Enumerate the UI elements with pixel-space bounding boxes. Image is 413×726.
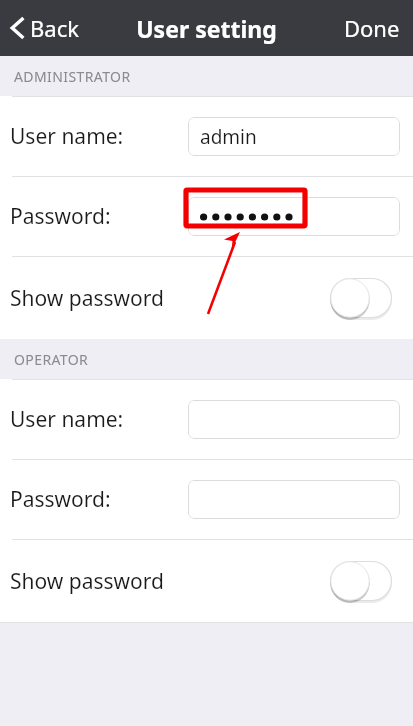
staticText: Password: <box>10 202 111 231</box>
staticText: Show password <box>10 567 164 596</box>
staticText: Done <box>344 13 400 43</box>
button[interactable]: Done <box>331 5 413 51</box>
staticText: User setting <box>136 13 277 44</box>
staticText: User name: <box>10 122 124 151</box>
button[interactable]: admin <box>188 117 400 156</box>
button[interactable]: User name: <box>0 380 413 459</box>
button[interactable]: Toggle Show password <box>330 561 392 601</box>
staticText: Password: <box>10 485 111 514</box>
button[interactable]: Toggle Show password <box>330 278 392 318</box>
button[interactable]: Show password <box>0 540 413 622</box>
button[interactable]: Password: <box>0 177 413 256</box>
staticText: Show password <box>10 284 164 313</box>
button[interactable]: Password: <box>0 460 413 539</box>
button[interactable]: Show password <box>0 257 413 339</box>
button[interactable]: User name: <box>0 97 413 176</box>
button[interactable] <box>188 400 400 439</box>
button[interactable] <box>188 197 400 236</box>
button[interactable] <box>188 480 400 519</box>
staticText: User name: <box>10 405 124 434</box>
staticText: Back <box>30 13 79 43</box>
staticText: OPERATOR <box>14 350 89 369</box>
staticText: ADMINISTRATOR <box>14 67 131 86</box>
staticText: admin <box>200 124 257 150</box>
button[interactable]: Back <box>6 7 82 49</box>
